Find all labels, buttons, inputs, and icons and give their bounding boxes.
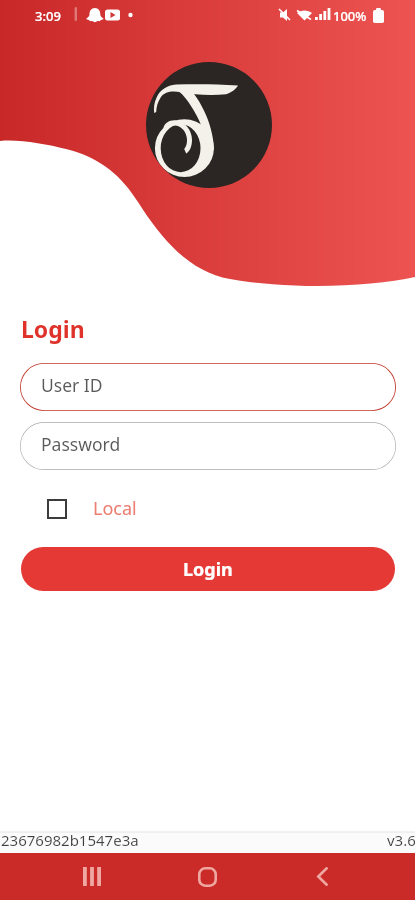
button[interactable]: User ID	[20, 363, 396, 411]
staticText: Local	[93, 496, 137, 521]
staticText: Login	[21, 313, 85, 344]
staticText: 3:09	[35, 7, 61, 25]
button[interactable]: Back	[292, 853, 353, 900]
staticText: Login	[183, 557, 233, 582]
staticText: Password	[41, 432, 121, 456]
staticText: 100%	[333, 7, 367, 25]
button[interactable]: Recent apps	[61, 853, 122, 900]
staticText: v3.6	[387, 830, 415, 850]
button[interactable]: Home	[177, 853, 238, 900]
staticText: 23676982b1547e3a	[1, 830, 139, 850]
staticText: User ID	[41, 373, 103, 397]
button[interactable]: Password	[20, 422, 396, 470]
button[interactable]: Login	[21, 547, 395, 591]
button[interactable]: Local	[44, 494, 137, 523]
